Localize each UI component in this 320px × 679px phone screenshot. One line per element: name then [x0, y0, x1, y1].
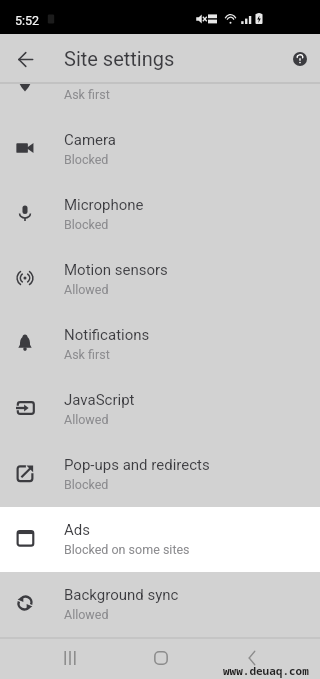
staticText: Notifications	[64, 326, 150, 344]
staticText: Allowed	[64, 282, 109, 297]
staticText: Blocked	[64, 477, 109, 492]
staticText: Allowed	[64, 412, 109, 427]
staticText: JavaScript	[64, 391, 135, 409]
staticText: Blocked on some sites	[64, 542, 190, 557]
staticText: Ask first	[64, 87, 110, 102]
button[interactable]: Notifications	[0, 312, 320, 377]
staticText: Blocked	[64, 152, 109, 167]
staticText: Motion sensors	[64, 261, 168, 279]
staticText: Ask first	[64, 347, 110, 362]
button[interactable]: Background sync	[0, 572, 320, 637]
button[interactable]: Ads	[0, 507, 320, 572]
button[interactable]: Microphone	[0, 182, 320, 247]
button[interactable]: Camera	[0, 117, 320, 182]
staticText: Allowed	[64, 607, 109, 622]
button[interactable]: Back	[232, 638, 272, 678]
button[interactable]: Back	[0, 34, 50, 84]
button[interactable]: Help	[274, 36, 320, 82]
staticText: Blocked	[64, 217, 109, 232]
staticText: www.deuaq.com	[223, 663, 309, 678]
staticText: Pop-ups and redirects	[64, 456, 210, 474]
button[interactable]: Home	[141, 638, 181, 678]
button[interactable]: Location	[0, 84, 320, 117]
staticText: Microphone	[64, 196, 144, 214]
staticText: 5:52	[15, 13, 40, 28]
button[interactable]: JavaScript	[0, 377, 320, 442]
staticText: Ads	[64, 521, 90, 539]
button[interactable]: Motion sensors	[0, 247, 320, 312]
staticText: Site settings	[64, 47, 175, 70]
staticText: Background sync	[64, 586, 179, 604]
button[interactable]: Pop-ups and redirects	[0, 442, 320, 507]
staticText: Camera	[64, 131, 116, 149]
button[interactable]: Recent apps	[50, 638, 90, 678]
